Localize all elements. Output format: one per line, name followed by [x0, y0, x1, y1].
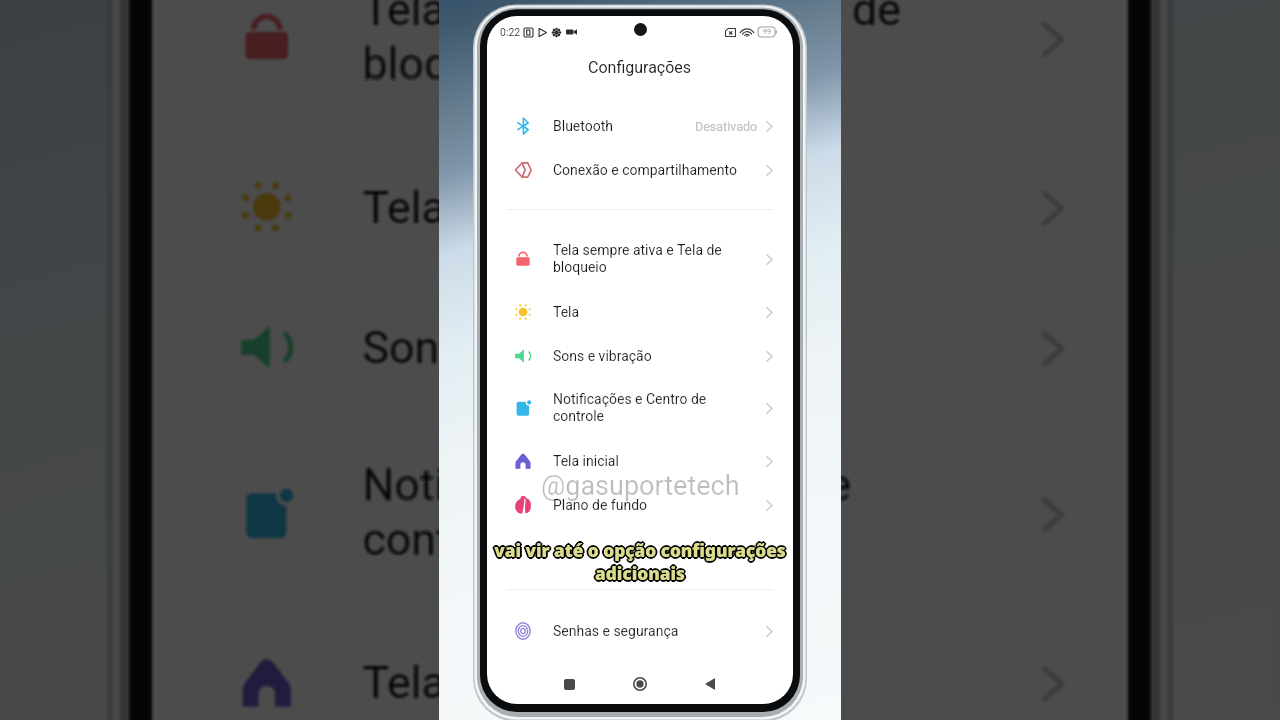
button[interactable]: Tela sempre ativa e Tela de bloqueio — [487, 232, 793, 286]
button[interactable]: Notificações e Centro de controle — [151, 426, 1127, 598]
button[interactable]: Tela inicial — [153, 611, 1129, 720]
button[interactable]: Notificações e Centro de controle — [151, 428, 1127, 601]
staticText: Sons e vibração — [362, 324, 1042, 375]
staticText: Notificações e Centro de controle — [361, 458, 1041, 566]
button[interactable]: Notificações e Centro de controle — [152, 425, 1128, 597]
button[interactable]: Tela sempre ativa e Tela de bloqueio — [152, 0, 1128, 122]
staticText: Tela sempre ativa e Tela de bloqueio — [362, 0, 1042, 94]
staticText: Conexão e compartilhamento — [553, 162, 766, 178]
button[interactable]: Tela — [150, 137, 1126, 277]
staticText: Tela inicial — [361, 655, 1041, 706]
button[interactable]: Tela inicial — [150, 612, 1126, 720]
button[interactable]: Tela sempre ativa e Tela de bloqueio — [151, 0, 1127, 123]
button[interactable]: Tela sempre ativa e Tela de bloqueio — [150, 0, 1126, 124]
button[interactable]: Notificações e Centro de controle — [487, 381, 793, 435]
button[interactable]: Tela inicial — [154, 612, 1130, 720]
button[interactable]: Recents — [555, 670, 583, 698]
button[interactable]: Sons e vibração — [487, 334, 793, 378]
button[interactable]: Sons e vibração — [153, 276, 1129, 416]
button[interactable]: Tela sempre ativa e Tela de bloqueio — [153, 0, 1129, 125]
staticText: @gasuportetech — [322, 711, 957, 720]
button[interactable]: Notificações e Centro de controle — [153, 426, 1129, 598]
button[interactable]: Sons e vibração — [154, 277, 1130, 417]
button[interactable]: Tela sempre ativa e Tela de bloqueio — [154, 0, 1130, 124]
staticText: Tela inicial — [362, 655, 1042, 706]
staticText: Configurações — [588, 58, 692, 77]
button[interactable]: Plano de fundo — [487, 483, 793, 527]
button[interactable]: Tela sempre ativa e Tela de bloqueio — [152, 0, 1128, 124]
button[interactable]: Notificações e Centro de controle — [154, 427, 1130, 599]
staticText: Tela sempre ativa e Tela de bloqueio — [364, 0, 1044, 92]
staticText: vai vir até o opção configurações adicio… — [488, 538, 790, 584]
staticText: Notificações e Centro de controle — [364, 459, 1044, 567]
button[interactable]: Tela — [151, 138, 1127, 278]
button[interactable]: Tela — [152, 135, 1128, 275]
staticText: Tela — [361, 183, 1041, 234]
button[interactable]: Tela inicial — [487, 439, 793, 483]
button[interactable]: Sons e vibração — [152, 279, 1128, 419]
button[interactable]: Tela — [153, 135, 1129, 276]
staticText: Tela — [362, 181, 1042, 232]
staticText: vai vir até o opção configurações adicio… — [489, 537, 791, 583]
button[interactable]: Sons e vibração — [151, 276, 1127, 416]
staticText: Tela — [364, 183, 1043, 234]
staticText: @gasuportetech — [325, 712, 960, 720]
button[interactable]: Tela inicial — [152, 614, 1128, 720]
button[interactable]: Tela sempre ativa e Tela de bloqueio — [153, 0, 1129, 123]
button[interactable]: Tela — [487, 290, 793, 334]
staticText: Sons e vibração — [362, 320, 1042, 371]
staticText: Sons e vibração — [364, 323, 1043, 374]
button[interactable]: Notificações e Centro de controle — [153, 428, 1129, 601]
staticText: vai vir até o opção configurações adicio… — [488, 538, 790, 584]
button[interactable]: Back — [696, 670, 724, 698]
button[interactable]: Sons e vibração — [152, 277, 1128, 417]
button[interactable]: Sons e vibração — [151, 278, 1127, 419]
button[interactable]: Senhas e segurança — [487, 609, 793, 653]
button[interactable]: Tela — [154, 137, 1130, 277]
button[interactable]: Bluetooth — [487, 104, 793, 148]
staticText: Notificações e Centro de controle — [361, 460, 1041, 569]
staticText: @gasuportetech — [541, 470, 740, 502]
button[interactable]: Home — [626, 670, 654, 698]
staticText: Notificações e Centro de controle — [553, 391, 766, 425]
staticText: @gasuportetech — [325, 710, 960, 720]
staticText: @gasuportetech — [324, 709, 959, 720]
staticText: Tela sempre ativa e Tela de bloqueio — [362, 0, 1042, 90]
button[interactable]: Tela — [152, 139, 1128, 279]
button[interactable]: Sons e vibração — [152, 275, 1128, 416]
staticText: Notificações e Centro de controle — [362, 459, 1042, 567]
staticText: Tela — [362, 179, 1042, 230]
staticText: Tela inicial — [361, 658, 1041, 709]
staticText: 99 — [763, 28, 771, 36]
button[interactable]: Sons e vibração — [153, 278, 1129, 419]
button[interactable]: Tela inicial — [151, 613, 1127, 720]
staticText: Notificações e Centro de controle — [362, 461, 1042, 569]
button[interactable]: Tela sempre ativa e Tela de bloqueio — [151, 0, 1127, 125]
button[interactable]: Tela — [151, 135, 1127, 276]
button[interactable]: Tela inicial — [152, 612, 1128, 720]
staticText: Tela sempre ativa e Tela de bloqueio — [361, 0, 1041, 93]
button[interactable]: Sons e vibração — [150, 277, 1126, 417]
staticText: Tela — [553, 304, 766, 320]
button[interactable]: Tela — [152, 137, 1128, 277]
staticText: Tela — [364, 181, 1044, 232]
staticText: Tela inicial — [362, 659, 1042, 710]
button[interactable]: Tela — [153, 138, 1129, 278]
button[interactable]: Tela inicial — [151, 611, 1127, 720]
staticText: Tela sempre ativa e Tela de bloqueio — [361, 0, 1040, 92]
staticText: Sons e vibração — [361, 322, 1040, 373]
staticText: Sons e vibração — [361, 323, 1041, 374]
button[interactable]: Notificações e Centro de controle — [152, 427, 1128, 599]
button[interactable]: Tela sempre ativa e Tela de bloqueio — [152, 0, 1128, 126]
staticText: vai vir até o opção configurações adicio… — [491, 539, 793, 585]
button[interactable]: Tela inicial — [153, 613, 1129, 720]
staticText: Notificações e Centro de controle — [364, 458, 1043, 566]
button[interactable]: Notificações e Centro de controle — [152, 429, 1128, 601]
button[interactable]: Conexão e compartilhamento — [487, 148, 793, 192]
staticText: Tela sempre ativa e Tela de bloqueio — [364, 0, 1043, 93]
staticText: Sons e vibração — [553, 348, 766, 364]
staticText: Notificações e Centro de controle — [364, 460, 1043, 569]
button[interactable]: Notificações e Centro de controle — [150, 427, 1126, 599]
button[interactable]: Tela inicial — [152, 610, 1128, 720]
staticText: @gasuportetech — [326, 711, 961, 720]
